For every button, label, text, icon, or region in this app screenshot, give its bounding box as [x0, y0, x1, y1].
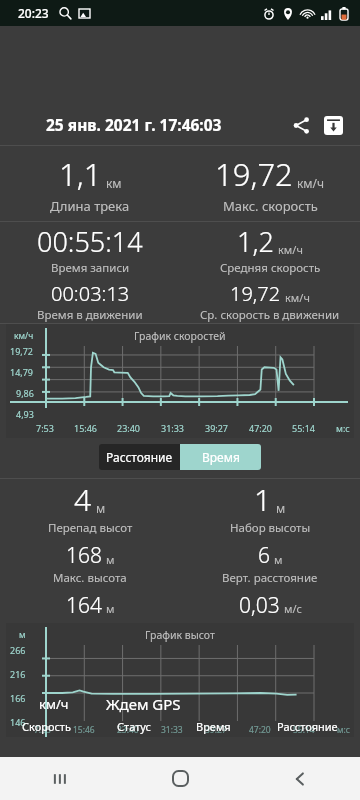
staticText: 19,72: [215, 153, 293, 195]
staticText: 23:40: [117, 422, 141, 434]
staticText: Макс. скорость: [223, 197, 318, 215]
staticText: 6: [258, 541, 270, 570]
staticText: Время: [202, 449, 240, 465]
staticText: км/ч: [297, 175, 325, 191]
staticText: 7:53: [36, 422, 54, 434]
button[interactable]: Back: [240, 757, 360, 800]
staticText: Длина трека: [50, 197, 130, 215]
staticText: 4,93: [16, 408, 34, 420]
staticText: Макс. высота: [53, 570, 127, 586]
button[interactable]: Home: [120, 757, 240, 800]
staticText: 23:40: [117, 724, 139, 736]
staticText: Статус: [117, 719, 151, 734]
staticText: Перепад высот: [48, 520, 133, 536]
staticText: 1: [254, 479, 272, 520]
staticText: 168: [66, 541, 102, 570]
button[interactable]: 19,72: [180, 153, 360, 215]
staticText: Время: [196, 719, 231, 734]
staticText: 266: [10, 644, 26, 656]
staticText: 1,1: [59, 153, 102, 195]
staticText: Время в движении: [37, 307, 143, 323]
staticText: км/ч: [278, 242, 303, 257]
staticText: 47:20: [249, 422, 273, 434]
staticText: 4: [74, 479, 92, 520]
staticText: м: [106, 601, 115, 616]
staticText: 31:33: [161, 422, 185, 434]
staticText: 9,86: [16, 387, 34, 399]
staticText: 55:14: [292, 422, 316, 434]
staticText: 31:33: [161, 724, 183, 736]
staticText: График высот: [145, 628, 215, 642]
button[interactable]: 1,1: [0, 153, 180, 215]
staticText: км/ч: [14, 330, 34, 342]
button[interactable]: Share: [286, 110, 316, 140]
staticText: м:с: [337, 724, 350, 736]
staticText: м: [106, 552, 115, 567]
button[interactable]: 4: [0, 479, 180, 619]
staticText: 166: [10, 692, 26, 704]
button[interactable]: 00:55:14: [0, 223, 180, 323]
staticText: График скоростей: [134, 329, 226, 343]
staticText: Расстояние: [106, 449, 173, 465]
staticText: Время записи: [51, 260, 130, 276]
staticText: 25 янв. 2021 г. 17:46:03: [46, 114, 222, 135]
staticText: 19,72: [230, 280, 281, 307]
button[interactable]: 1,2: [180, 223, 360, 323]
staticText: Расстояние: [277, 719, 338, 734]
staticText: 164: [66, 591, 102, 619]
staticText: м: [274, 552, 283, 567]
button[interactable]: Recents: [0, 757, 120, 800]
staticText: 39:27: [205, 724, 227, 736]
staticText: м:с: [336, 422, 350, 434]
button[interactable]: Download: [318, 110, 348, 140]
staticText: 1,2: [237, 223, 274, 260]
staticText: 0,03: [239, 591, 280, 619]
staticText: Средняя скорость: [220, 260, 321, 276]
button[interactable]: График скоростей: [6, 324, 354, 438]
staticText: Набор высоты: [230, 520, 311, 536]
staticText: м/с: [284, 601, 302, 616]
staticText: 146: [10, 716, 26, 728]
staticText: 55:14: [293, 724, 315, 736]
button[interactable]: График высот: [6, 623, 354, 737]
staticText: Верт. расстояние: [222, 570, 318, 586]
staticText: 216: [10, 668, 26, 680]
staticText: 15:46: [74, 422, 98, 434]
staticText: м: [96, 500, 106, 516]
staticText: м: [276, 500, 286, 516]
button[interactable]: Время: [180, 444, 261, 470]
staticText: Ср. скорость в движении: [200, 307, 340, 323]
staticText: 39:27: [205, 422, 229, 434]
button[interactable]: Расстояние: [99, 444, 180, 470]
staticText: 00:55:14: [37, 223, 143, 260]
staticText: м: [19, 629, 26, 641]
staticText: 20:23: [18, 5, 49, 21]
staticText: Скорость: [22, 719, 71, 734]
staticText: 19,72: [10, 345, 34, 357]
staticText: 14,79: [10, 366, 34, 378]
staticText: Ждем GPS: [106, 694, 181, 714]
staticText: км/ч: [39, 695, 69, 713]
staticText: км/ч: [285, 290, 310, 305]
staticText: 47:20: [249, 724, 271, 736]
staticText: 7:53: [34, 724, 51, 736]
staticText: 15:46: [73, 724, 95, 736]
staticText: км: [106, 175, 122, 191]
button[interactable]: 1: [180, 479, 360, 619]
staticText: 00:03:13: [51, 280, 130, 307]
